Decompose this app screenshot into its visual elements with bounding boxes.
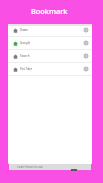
button[interactable]: Search (8, 50, 92, 62)
button[interactable]: YouTube (8, 63, 92, 75)
staticText: YouTube (20, 67, 33, 71)
button[interactable]: More options (83, 53, 89, 59)
button[interactable]: Google (8, 37, 92, 49)
staticText: Learn how to use (17, 165, 43, 169)
button[interactable]: More options (83, 27, 89, 33)
button[interactable]: More options (83, 66, 89, 72)
button[interactable]: Dawn (8, 24, 92, 36)
button[interactable]: More options (83, 40, 89, 46)
staticText: Google (20, 41, 31, 45)
button[interactable]: Learn how to use (9, 164, 91, 170)
staticText: Bookmark (31, 6, 68, 16)
staticText: Dawn (20, 28, 29, 32)
staticText: Search (20, 54, 30, 58)
